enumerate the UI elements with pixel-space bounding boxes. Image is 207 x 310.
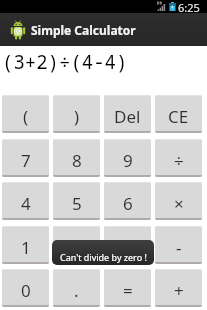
- staticText: 2: [72, 236, 82, 259]
- button[interactable]: -: [155, 226, 202, 264]
- staticText: .: [74, 279, 79, 302]
- button[interactable]: 8: [53, 139, 100, 177]
- staticText: 7: [21, 149, 31, 172]
- button[interactable]: 5: [53, 182, 100, 220]
- staticText: Can't divide by zero !: [60, 251, 147, 263]
- staticText: (: [23, 105, 29, 128]
- staticText: ×: [174, 192, 184, 215]
- button[interactable]: .: [53, 269, 100, 307]
- button[interactable]: 3: [104, 226, 151, 264]
- button[interactable]: 4: [2, 182, 49, 220]
- staticText: 0: [21, 279, 31, 302]
- staticText: -: [176, 236, 182, 259]
- button[interactable]: 7: [2, 139, 49, 177]
- button[interactable]: ÷: [155, 139, 202, 177]
- button[interactable]: Del: [104, 95, 151, 133]
- staticText: 6:25: [178, 0, 200, 13]
- button[interactable]: 0: [2, 269, 49, 307]
- staticText: ÷: [174, 149, 184, 172]
- button[interactable]: 9: [104, 139, 151, 177]
- button[interactable]: CE: [155, 95, 202, 133]
- button[interactable]: 6: [104, 182, 151, 220]
- staticText: CE: [168, 105, 189, 128]
- button[interactable]: (: [2, 95, 49, 133]
- button[interactable]: +: [155, 269, 202, 307]
- button[interactable]: =: [104, 269, 151, 307]
- staticText: 1: [21, 236, 31, 259]
- staticText: 9: [123, 149, 133, 172]
- staticText: ): [74, 105, 80, 128]
- staticText: Simple Calculator: [31, 22, 136, 38]
- staticText: 5: [72, 192, 82, 215]
- staticText: 3: [123, 236, 133, 259]
- button[interactable]: Simple Calculator: [0, 13, 207, 46]
- staticText: +: [174, 279, 184, 302]
- button[interactable]: ): [53, 95, 100, 133]
- button[interactable]: 1: [2, 226, 49, 264]
- staticText: (3+2)÷(4-4): [2, 49, 128, 75]
- staticText: 4: [21, 192, 31, 215]
- button[interactable]: 2: [53, 226, 100, 264]
- staticText: 6: [123, 192, 133, 215]
- staticText: Del: [114, 105, 141, 128]
- button[interactable]: ×: [155, 182, 202, 220]
- staticText: =: [123, 279, 133, 302]
- staticText: 8: [72, 149, 82, 172]
